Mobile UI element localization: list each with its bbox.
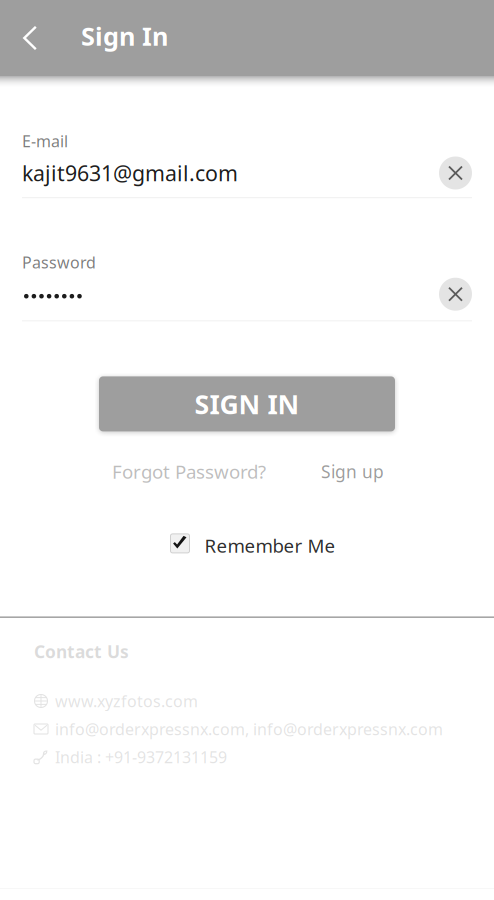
staticText: India : +91-9372131159	[55, 746, 227, 768]
staticText: Sign In	[81, 19, 168, 53]
button[interactable]: Sign up	[321, 459, 384, 483]
button[interactable]: Remember Me	[170, 533, 335, 557]
button[interactable]: Clear e-mail	[439, 156, 472, 189]
staticText: Remember Me	[204, 533, 335, 558]
staticText: kajit9631@gmail.com	[22, 159, 238, 187]
staticText: Contact Us	[34, 640, 129, 663]
staticText: www.xyzfotos.com	[55, 690, 198, 712]
button[interactable]: SIGN IN	[99, 376, 395, 431]
staticText: SIGN IN	[194, 386, 299, 422]
staticText: Password	[22, 252, 96, 273]
staticText: info@orderxpressnx.com, info@orderxpress…	[55, 718, 443, 740]
button[interactable]: Forgot Password?	[112, 459, 266, 483]
button[interactable]: Clear password	[439, 278, 472, 311]
staticText: E-mail	[22, 130, 68, 152]
staticText: Sign up	[321, 460, 384, 483]
button[interactable]: Back	[0, 0, 60, 76]
staticText: Forgot Password?	[112, 459, 266, 484]
